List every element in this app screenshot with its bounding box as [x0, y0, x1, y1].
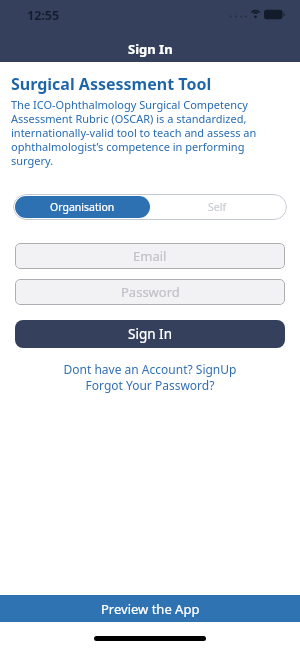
staticText: Surgical Assessment Tool	[11, 73, 212, 95]
button[interactable]: Forgot Your Password?	[0, 377, 300, 393]
button[interactable]: Sign In	[15, 320, 285, 348]
staticText: Organisation	[50, 200, 115, 214]
button[interactable]: Self	[150, 196, 285, 218]
staticText: Email	[133, 247, 167, 265]
button[interactable]: Dont have an Account? SignUp	[0, 361, 300, 377]
button[interactable]: Password	[15, 279, 285, 305]
staticText: Sign In	[128, 40, 173, 58]
button[interactable]: Organisation	[15, 196, 150, 218]
button[interactable]: Email	[15, 243, 285, 269]
staticText: The ICO-Ophthalmology Surgical Competenc…	[11, 97, 257, 168]
button[interactable]: Preview the App	[0, 595, 300, 622]
staticText: Preview the App	[101, 600, 200, 618]
staticText: Sign In	[128, 325, 172, 343]
staticText: Password	[121, 283, 180, 301]
staticText: 12:55	[27, 7, 60, 24]
staticText: Self	[208, 200, 227, 214]
